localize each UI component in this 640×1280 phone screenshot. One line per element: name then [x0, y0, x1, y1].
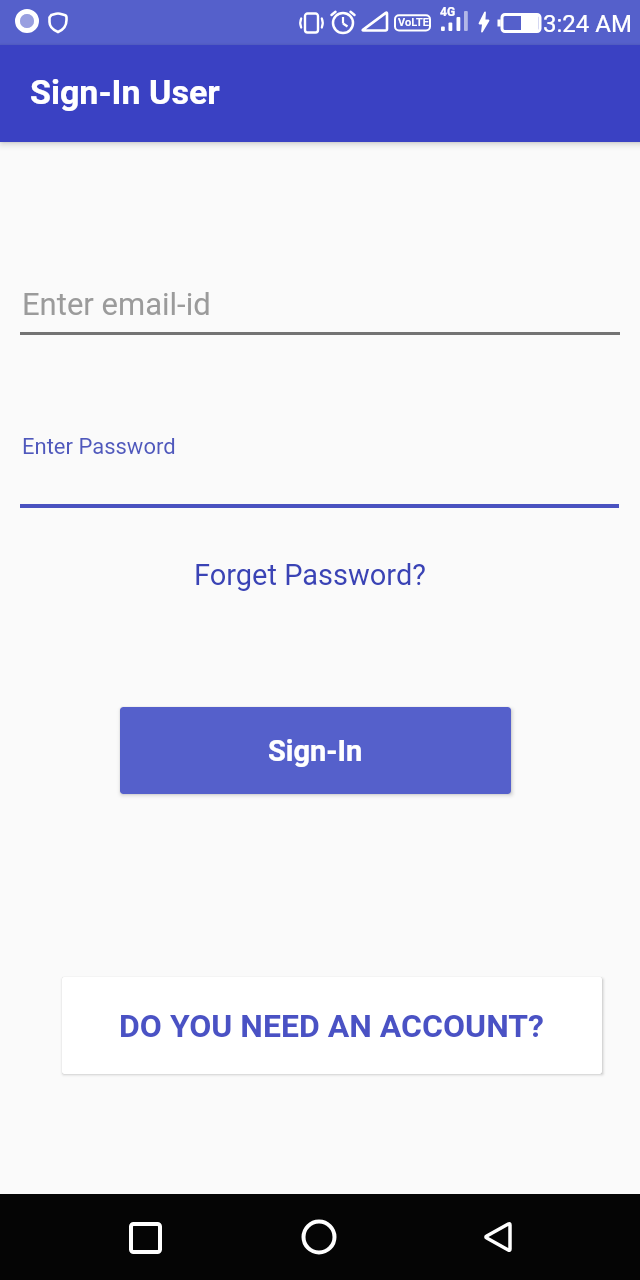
button[interactable]: DO YOU NEED AN ACCOUNT?: [62, 977, 602, 1074]
button[interactable]: Enter email-id: [0, 270, 640, 335]
button[interactable]: [468, 1207, 528, 1267]
staticText: Sign-In: [268, 734, 363, 768]
staticText: 3:24 AM: [543, 10, 632, 38]
staticText: VoLTE: [398, 16, 429, 29]
button[interactable]: Forget Password?: [194, 558, 426, 592]
staticText: Enter Password: [22, 434, 176, 460]
button[interactable]: Sign-In: [120, 707, 511, 794]
staticText: 4G: [440, 5, 456, 19]
staticText: Sign-In User: [30, 72, 220, 112]
button[interactable]: [115, 1207, 175, 1267]
button[interactable]: Enter Password: [0, 425, 640, 508]
staticText: Enter email-id: [22, 286, 211, 322]
staticText: DO YOU NEED AN ACCOUNT?: [119, 1007, 545, 1045]
button[interactable]: [289, 1207, 349, 1267]
